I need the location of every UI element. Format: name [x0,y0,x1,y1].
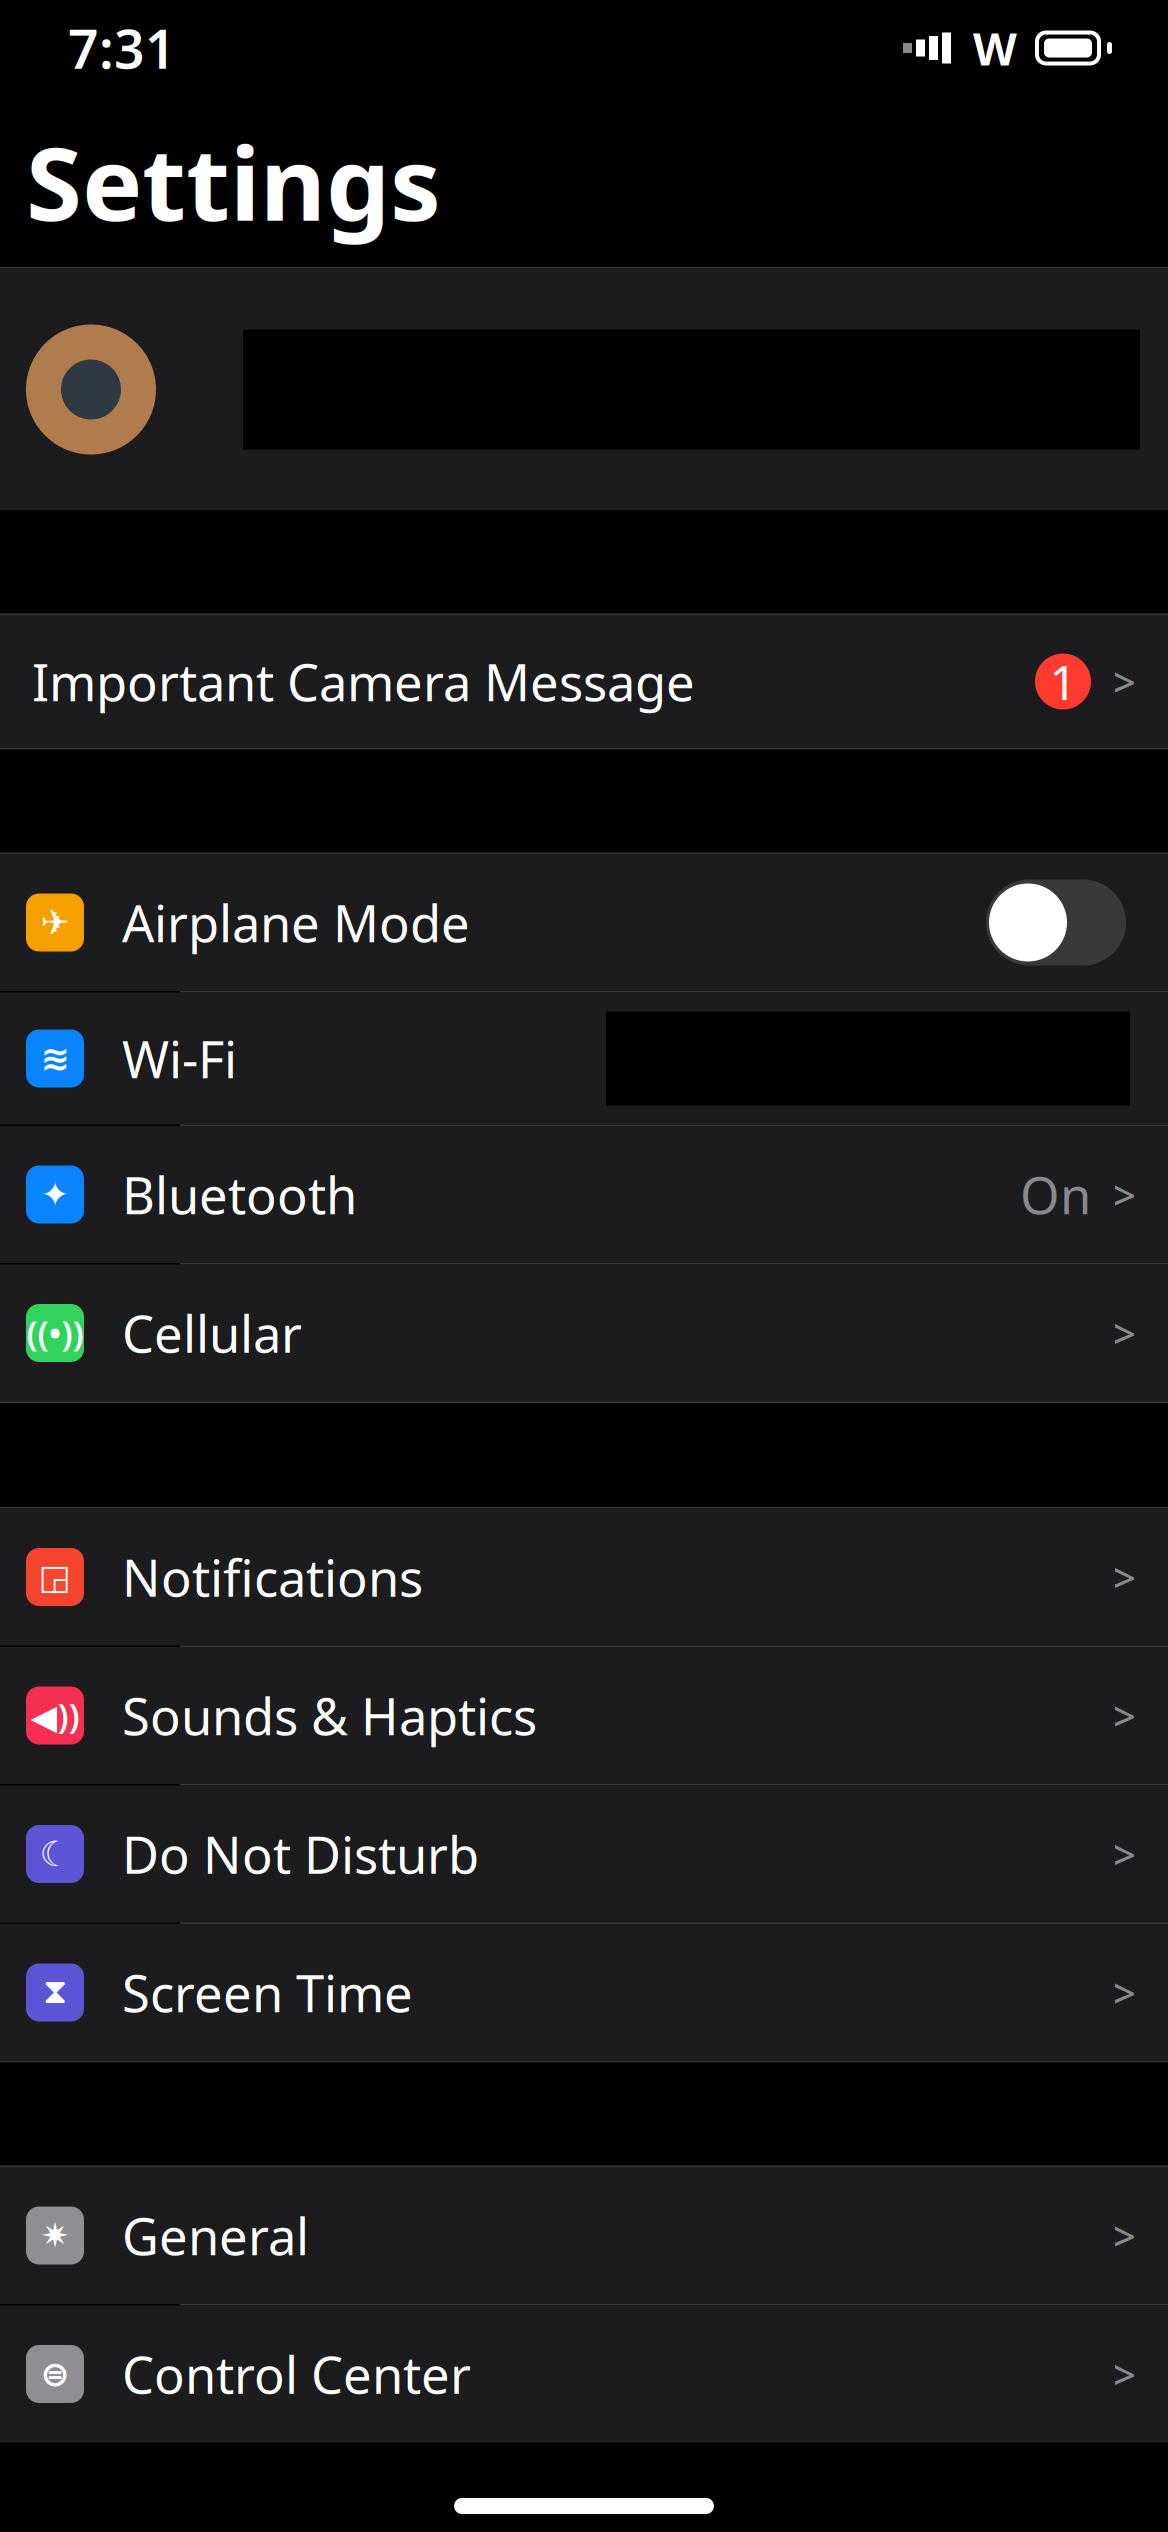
staticText: Important Camera Message [32,648,695,715]
button[interactable]: ✈ [0,854,1168,991]
staticText: 1 [1049,650,1076,713]
staticText: > [1113,1550,1136,1603]
button[interactable]: ☾ [0,1785,1168,1922]
button[interactable]: Important Camera Message [0,615,1168,748]
staticText: > [1113,1966,1136,2019]
staticText: > [1113,655,1136,708]
staticText: > [1113,1827,1136,1880]
button[interactable]: ⊜ [0,2305,1168,2442]
staticText: Do Not Disturb [122,1820,479,1888]
staticText: ☾ [39,1834,70,1874]
staticText: W [973,18,1017,78]
button[interactable]: ◲ [0,1508,1168,1645]
staticText: Wi-Fi [122,1025,237,1092]
staticText: 7:31 [68,13,176,83]
staticText: > [1113,1168,1136,1221]
button[interactable]: ((•)) [0,1264,1168,1401]
staticText: > [1113,2209,1136,2262]
staticText: Settings [26,114,441,249]
button[interactable]: ≋ [0,992,1168,1124]
button[interactable]: ⧗ [0,1924,1168,2061]
button[interactable]: ✷ [0,2167,1168,2304]
button[interactable]: ✦ [0,1126,1168,1263]
staticText: ✦ [40,1175,69,1214]
staticText: ✈ [40,903,69,942]
staticText: > [1113,2347,1136,2400]
staticText: Cellular [122,1299,302,1367]
staticText: Screen Time [122,1959,413,2026]
staticText: ◀)) [30,1692,79,1738]
staticText: General [122,2202,309,2269]
staticText: > [1113,1689,1136,1742]
staticText: Bluetooth [122,1161,357,1228]
staticText: ⊜ [40,2354,69,2394]
staticText: Control Center [122,2340,471,2408]
staticText: ◲ [38,1557,71,1597]
staticText: > [1113,1306,1136,1359]
staticText: ✷ [40,2216,69,2255]
staticText: On [1020,1161,1091,1228]
staticText: ≋ [40,1039,69,1078]
staticText: ⧗ [43,1976,67,2009]
staticText: Sounds & Haptics [122,1682,537,1749]
button[interactable] [0,268,1168,510]
staticText: ((•)) [26,1310,83,1356]
staticText: Airplane Mode [122,889,470,956]
staticText: Notifications [122,1543,423,1611]
button[interactable]: ◀)) [0,1647,1168,1784]
